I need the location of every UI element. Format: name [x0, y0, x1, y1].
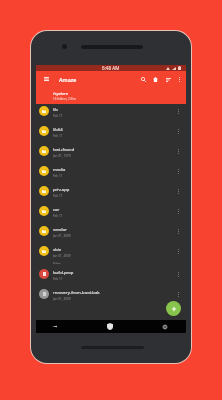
button[interactable]: More options	[174, 144, 182, 158]
staticText: Feb 11	[53, 114, 63, 118]
staticText: usr	[53, 207, 60, 213]
button[interactable]: More options	[174, 164, 182, 178]
staticText: Feb 11	[53, 134, 63, 138]
button[interactable]: vendor	[36, 221, 186, 241]
button[interactable]: Home	[101, 320, 118, 333]
staticText: Jan 01, 2009	[53, 297, 71, 301]
button[interactable]: usr	[36, 201, 186, 221]
button[interactable]: More options	[174, 124, 182, 138]
button[interactable]: lib	[36, 101, 186, 121]
staticText: Feb 11	[53, 194, 63, 198]
staticText: Feb 11	[53, 174, 63, 178]
button[interactable]: media	[36, 161, 186, 181]
button[interactable]: recovery-from-boot.bak	[36, 284, 186, 304]
button[interactable]: More options	[174, 204, 182, 218]
button[interactable]: build.prop	[36, 264, 186, 284]
button[interactable]: Search	[138, 74, 149, 85]
staticText: lost+found	[53, 147, 75, 153]
button[interactable]: Add	[166, 301, 181, 316]
staticText: recovery-from-boot.bak	[53, 290, 100, 296]
staticText: /system	[53, 91, 69, 97]
staticText: Files	[53, 261, 61, 264]
button[interactable]: More options	[174, 184, 182, 198]
button[interactable]: More options	[174, 224, 182, 238]
button[interactable]: Go home	[150, 74, 161, 85]
staticText: xbin	[53, 247, 62, 253]
staticText: Jan 01, 1970	[53, 154, 71, 158]
staticText: vendor	[53, 227, 67, 233]
button[interactable]: lib64	[36, 121, 186, 141]
staticText: Feb 11	[53, 277, 63, 281]
staticText: build.prop	[53, 270, 74, 276]
staticText: 6:48 AM	[102, 65, 120, 71]
staticText: Jan 01, 2009	[53, 254, 71, 258]
button[interactable]: More options	[175, 74, 184, 85]
staticText: priv-app	[53, 187, 70, 193]
button[interactable]: priv-app	[36, 181, 186, 201]
button[interactable]: Open navigation drawer	[41, 73, 52, 85]
button[interactable]: More options	[174, 267, 182, 281]
button[interactable]: xbin	[36, 241, 186, 261]
button[interactable]: More options	[174, 287, 182, 301]
staticText: Amaze	[59, 76, 77, 83]
button[interactable]: Back	[46, 320, 63, 333]
staticText: lib64	[53, 127, 63, 133]
staticText: Feb 11	[53, 214, 63, 218]
staticText: lib	[53, 107, 58, 113]
staticText: Jan 01, 2009	[53, 234, 71, 238]
button[interactable]: lost+found	[36, 141, 186, 161]
button[interactable]: Recent apps	[156, 320, 173, 333]
staticText: 16 folders, 2 files	[53, 97, 76, 101]
staticText: media	[53, 167, 66, 173]
button[interactable]: More options	[174, 104, 182, 118]
button[interactable]: Sort	[163, 74, 174, 85]
button[interactable]: More options	[174, 244, 182, 258]
